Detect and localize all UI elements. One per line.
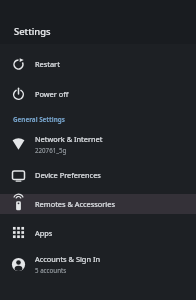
staticText: Power off bbox=[35, 89, 69, 99]
button[interactable]: Power off bbox=[0, 79, 196, 109]
staticText: Remotes & Accessories bbox=[35, 199, 115, 209]
staticText: General Settings bbox=[13, 115, 65, 124]
staticText: 5 accounts bbox=[35, 266, 67, 274]
button[interactable]: Remotes & Accessories bbox=[0, 189, 196, 218]
button[interactable]: Restart bbox=[0, 49, 196, 79]
button[interactable]: Apps bbox=[0, 218, 196, 247]
staticText: 220761_5g bbox=[35, 146, 67, 154]
staticText: Device Preferences bbox=[35, 170, 101, 180]
staticText: Accounts & Sign In bbox=[35, 254, 100, 264]
staticText: Settings bbox=[14, 25, 51, 38]
button[interactable]: Network & Internet bbox=[0, 127, 196, 161]
button[interactable]: Device Preferences bbox=[0, 161, 196, 189]
staticText: Restart bbox=[35, 59, 60, 69]
staticText: Network & Internet bbox=[35, 134, 103, 144]
staticText: Apps bbox=[35, 228, 53, 238]
button[interactable]: Accounts & Sign In bbox=[0, 247, 196, 281]
